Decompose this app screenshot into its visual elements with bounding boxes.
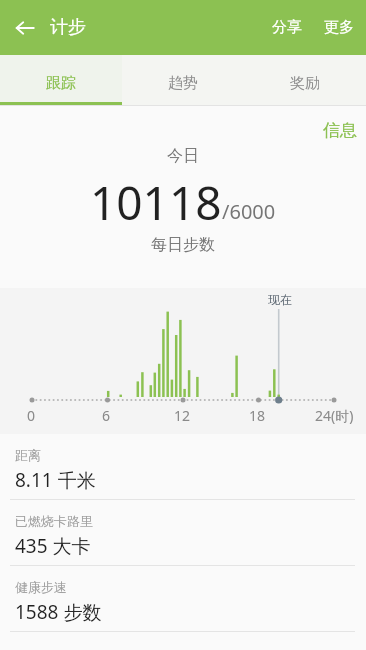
staticText: 现在 bbox=[268, 292, 292, 307]
staticText: 6 bbox=[102, 406, 111, 425]
staticText: 更多 bbox=[324, 18, 354, 37]
staticText: 今日 bbox=[167, 146, 199, 166]
button[interactable]: 距离 bbox=[0, 434, 366, 499]
staticText: 计步 bbox=[50, 16, 86, 39]
staticText: 1588 步数 bbox=[15, 599, 102, 625]
staticText: 奖励 bbox=[290, 74, 320, 93]
staticText: 信息 bbox=[323, 120, 357, 141]
staticText: 每日步数 bbox=[151, 235, 215, 255]
button[interactable]: Back bbox=[5, 8, 45, 48]
staticText: 10118 bbox=[90, 171, 222, 234]
staticText: 距离 bbox=[15, 447, 41, 463]
staticText: /6000 bbox=[222, 198, 276, 225]
button[interactable]: 分享 bbox=[261, 8, 313, 47]
button[interactable]: 健康步速 bbox=[0, 566, 366, 631]
button[interactable]: 已燃烧卡路里 bbox=[0, 500, 366, 565]
button[interactable]: 跟踪 bbox=[0, 55, 122, 105]
staticText: 趋势 bbox=[168, 74, 198, 93]
button[interactable]: 趋势 bbox=[122, 55, 244, 105]
staticText: 健康步速 bbox=[15, 579, 67, 595]
staticText: 已燃烧卡路里 bbox=[15, 513, 93, 529]
staticText: 18 bbox=[249, 406, 266, 425]
button[interactable]: 信息 bbox=[311, 106, 366, 151]
staticText: 24(时) bbox=[315, 406, 354, 425]
staticText: 跟踪 bbox=[46, 74, 76, 93]
button[interactable]: 奖励 bbox=[244, 55, 366, 105]
staticText: 435 大卡 bbox=[15, 533, 91, 559]
staticText: 0 bbox=[27, 406, 36, 425]
button[interactable]: 更多 bbox=[313, 8, 366, 47]
staticText: 8.11 千米 bbox=[15, 467, 96, 493]
staticText: 12 bbox=[174, 406, 191, 425]
staticText: 分享 bbox=[272, 18, 302, 37]
